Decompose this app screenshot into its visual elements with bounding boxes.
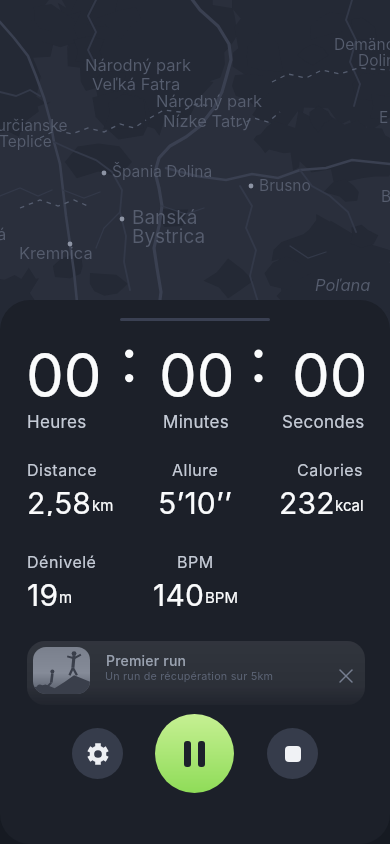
button[interactable]: Premier run	[27, 641, 365, 705]
button[interactable]: Fermer	[334, 664, 358, 688]
staticText: BPM	[205, 588, 238, 606]
button[interactable]: Réglages	[72, 728, 123, 779]
staticText: Špania Dolina	[112, 162, 213, 181]
staticText: B	[381, 187, 390, 206]
staticText: Un run de récupération sur 5km	[105, 670, 274, 683]
staticText: BPM	[177, 552, 214, 571]
staticText: kcal	[335, 496, 364, 514]
staticText: 00	[159, 339, 235, 412]
staticText: E	[379, 108, 389, 127]
staticText: Minutes	[163, 412, 229, 433]
staticText: Premier run	[106, 652, 187, 669]
staticText: á	[0, 224, 7, 244]
staticText: Nízke Tatry	[163, 111, 252, 131]
staticText: 140	[153, 577, 205, 608]
staticText: Turčianske	[0, 116, 68, 135]
staticText: 19	[27, 577, 59, 608]
staticText: 2,58	[27, 485, 92, 516]
staticText: Veľká Fatra	[92, 74, 181, 94]
staticText: Národný park	[156, 91, 263, 111]
staticText: Allure	[172, 460, 219, 479]
staticText: Heures	[27, 412, 87, 433]
staticText: Secondes	[282, 412, 365, 433]
staticText: Národný park	[85, 55, 192, 75]
staticText: Teplice	[0, 132, 52, 151]
staticText: 00	[26, 339, 102, 412]
staticText: Banská	[132, 206, 198, 229]
staticText: Calories	[297, 460, 364, 479]
staticText: Dénivelé	[27, 552, 97, 571]
staticText: Bystrica	[132, 225, 206, 248]
staticText: Distance	[27, 460, 98, 479]
staticText: Kremnica	[19, 243, 93, 263]
staticText: Brusno	[259, 176, 311, 195]
staticText: km	[92, 496, 114, 514]
button[interactable]: Arrêter	[267, 728, 318, 779]
staticText: Poľana	[315, 275, 371, 295]
staticText: 5’10’’	[158, 485, 233, 516]
staticText: Demänovská	[334, 35, 390, 54]
staticText: 00	[292, 339, 368, 412]
staticText: 232	[279, 485, 335, 516]
button[interactable]: Pause	[155, 714, 234, 793]
staticText: m	[59, 588, 73, 606]
staticText: Dolina	[358, 51, 390, 70]
